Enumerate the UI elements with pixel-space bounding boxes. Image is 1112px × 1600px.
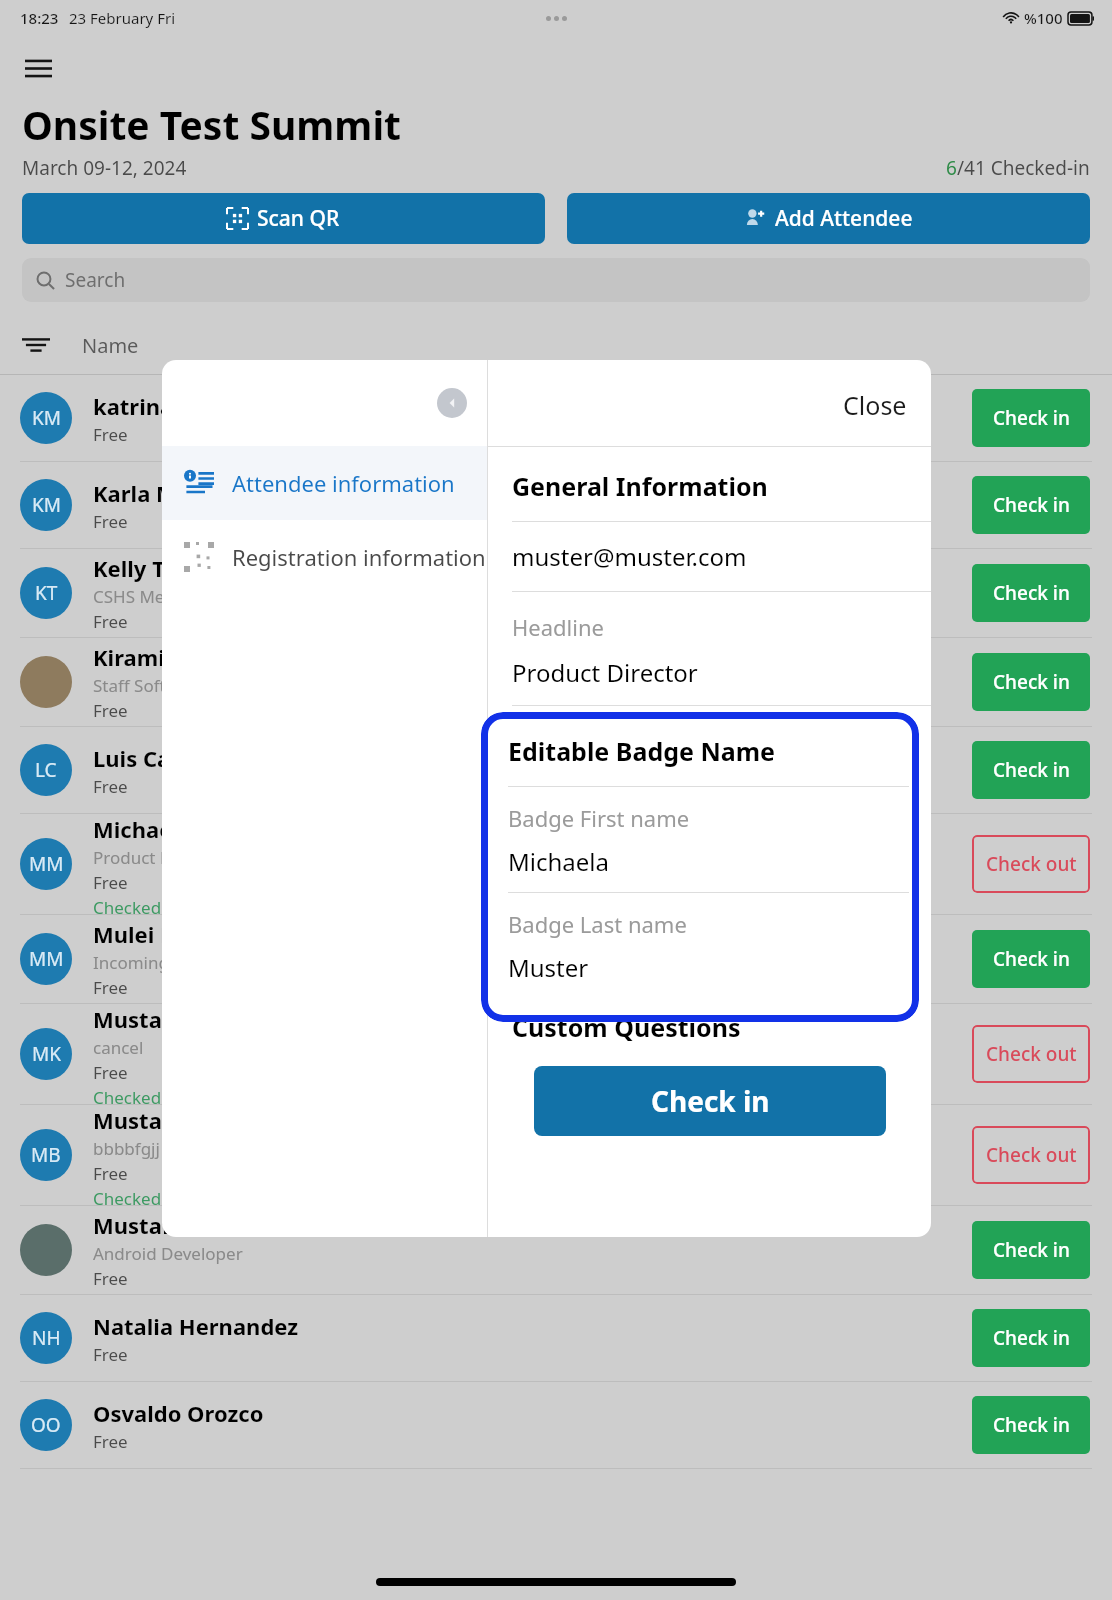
staticText: MM [29,946,64,972]
staticText: Check in [993,1325,1070,1351]
staticText: Close [843,388,907,422]
button[interactable]: Check out [972,1126,1090,1184]
staticText: Check out [986,1142,1077,1168]
button[interactable]: MK [0,1004,1112,1104]
button[interactable]: Check in [972,476,1090,534]
button[interactable]: Check in [972,653,1090,711]
staticText: Registration information [232,542,486,572]
staticText: 18:23 [20,8,59,28]
button[interactable]: Check in [534,1066,886,1136]
staticText: Scan QR [257,204,340,233]
staticText: Staff Software [93,674,205,697]
staticText: Mustafa Berk [93,1210,241,1240]
button[interactable]: Check in [972,741,1090,799]
staticText: Attendee information [232,468,455,498]
button[interactable]: MB [0,1105,1112,1205]
staticText: Check in [993,669,1070,695]
button[interactable]: OO [0,1382,1112,1468]
staticText: LC [35,757,57,783]
staticText: Badge First name [508,803,690,833]
staticText: Check in [651,1082,770,1120]
staticText: cancel [93,1036,144,1059]
staticText: Kirami Yoshi [93,642,229,672]
staticText: KM [32,405,61,431]
button[interactable]: Search [22,258,1090,302]
staticText: Checked in [93,1086,181,1104]
staticText: Free [93,1061,128,1084]
staticText: OO [31,1412,61,1438]
staticText: Free [93,510,128,533]
button[interactable]: Registration information [162,520,487,594]
button[interactable]: Check out [972,1025,1090,1083]
button[interactable]: Scan QR [22,193,545,244]
button[interactable]: MM [0,814,1112,914]
staticText: MK [32,1041,61,1067]
staticText: Michaela Muster [93,814,277,844]
button[interactable]: Check in [972,1309,1090,1367]
staticText: Check in [993,1412,1070,1438]
staticText: Check out [986,1041,1077,1067]
staticText: Free [93,775,128,798]
button[interactable]: Check out [972,835,1090,893]
staticText: Check in [993,1237,1070,1263]
staticText: %100 [1024,8,1063,28]
staticText: CSHS Member [93,585,208,608]
button[interactable]: Filter [22,331,50,359]
button[interactable]: NH [0,1295,1112,1381]
staticText: Free [93,976,128,999]
staticText: General Information [512,469,768,503]
button[interactable]: Check in [972,930,1090,988]
staticText: MB [31,1142,61,1168]
staticText: Product Director [512,656,698,689]
button[interactable]: Close [833,380,917,430]
button[interactable]: Mustafa Berk [0,1206,1112,1294]
button[interactable]: Back [437,388,467,418]
staticText: NH [32,1325,61,1351]
button[interactable]: Check in [972,564,1090,622]
staticText: March 09-12, 2024 [22,155,187,181]
staticText: 6 [946,155,957,181]
button[interactable]: LC [0,727,1112,813]
staticText: Mustafa Kemal [93,1004,259,1034]
staticText: Custom Questions [512,1010,741,1044]
staticText: Android Developer [93,1242,243,1265]
button[interactable]: Kirami Yoshi [0,638,1112,726]
button[interactable]: KM [0,375,1112,461]
staticText: Check in [993,492,1070,518]
staticText: KT [35,580,58,606]
staticText: Product Director [93,846,225,869]
staticText: Free [93,610,128,633]
staticText: MM [29,851,64,877]
staticText: Name [82,332,139,359]
button[interactable]: Check in [972,1396,1090,1454]
staticText: Free [93,1162,128,1185]
button[interactable]: MM [0,915,1112,1003]
staticText: Michaela [508,845,609,878]
button[interactable]: Add Attendee [567,193,1090,244]
staticText: Free [93,1343,128,1366]
button[interactable]: Menu [14,44,62,92]
button[interactable]: Check in [972,389,1090,447]
staticText: Check in [993,946,1070,972]
staticText: bbbbfgjj [93,1137,160,1160]
staticText: Badge Last name [508,909,687,939]
staticText: KM [32,492,61,518]
staticText: Karla Marquez [93,478,252,508]
staticText: Editable Badge Name [508,734,776,768]
staticText: Onsite Test Summit [22,98,401,151]
staticText: Mulei Mutisya [93,919,248,949]
staticText: Check out [986,851,1077,877]
staticText: Search [65,267,126,293]
button[interactable]: Check in [972,1221,1090,1279]
button[interactable]: KT [0,549,1112,637]
staticText: Muster [508,951,589,984]
button[interactable]: KM [0,462,1112,548]
staticText: Natalia Hernandez [93,1311,299,1341]
staticText: Mustafa ben [93,1105,231,1135]
staticText: Osvaldo Orozco [93,1398,264,1428]
staticText: muster@muster.com [512,540,747,573]
staticText: Checked in [93,896,181,914]
staticText: 23 February Fri [69,8,176,28]
button[interactable]: Attendee information [162,446,487,520]
staticText: Free [93,699,128,722]
